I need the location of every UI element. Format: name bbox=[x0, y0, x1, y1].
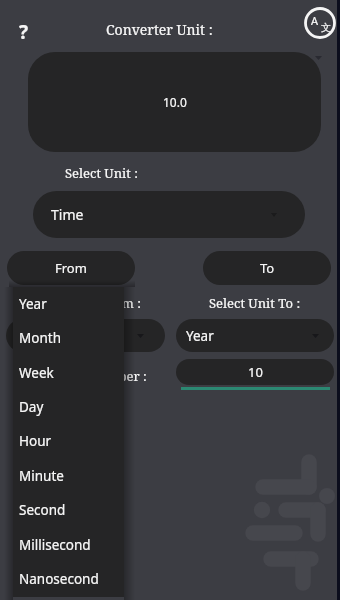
button[interactable]: To bbox=[203, 251, 331, 285]
button[interactable]: Change language bbox=[302, 5, 338, 41]
staticText: Year bbox=[16, 327, 44, 345]
staticText: Select Unit From : bbox=[31, 294, 141, 312]
staticText: From bbox=[55, 259, 87, 277]
button[interactable]: Second bbox=[13, 493, 124, 527]
staticText: Year bbox=[186, 327, 214, 345]
staticText: Second bbox=[19, 501, 66, 519]
staticText: Month bbox=[19, 329, 61, 347]
button[interactable]: Year bbox=[13, 287, 124, 321]
button[interactable]: Hour bbox=[13, 424, 124, 458]
button[interactable]: Year bbox=[176, 319, 334, 352]
button[interactable]: Time bbox=[33, 191, 305, 238]
button[interactable]: Help bbox=[9, 15, 39, 49]
button[interactable]: From bbox=[7, 251, 135, 285]
staticText: Nanosecond bbox=[19, 570, 99, 588]
button[interactable]: Minute bbox=[13, 459, 124, 493]
staticText: 10 bbox=[248, 363, 263, 381]
staticText: ? bbox=[19, 19, 29, 45]
staticText: Select Unit To : bbox=[209, 294, 301, 312]
staticText: Select Unit : bbox=[65, 164, 138, 182]
button[interactable]: Month bbox=[13, 321, 124, 355]
staticText: A bbox=[311, 13, 319, 28]
button[interactable]: 10 bbox=[176, 359, 334, 385]
staticText: Day bbox=[19, 398, 44, 416]
button[interactable]: Year bbox=[6, 319, 165, 352]
staticText: Week bbox=[19, 364, 54, 382]
staticText: 10.0 bbox=[163, 94, 187, 110]
staticText: 文 bbox=[321, 21, 331, 34]
staticText: Time bbox=[51, 205, 84, 224]
staticText: Millisecond bbox=[19, 536, 91, 554]
staticText: Converter Unit : bbox=[106, 20, 213, 39]
staticText: To bbox=[260, 259, 275, 277]
staticText: Year bbox=[19, 295, 47, 313]
staticText: Enter The Number : bbox=[24, 367, 147, 385]
button[interactable]: Millisecond bbox=[13, 528, 124, 562]
staticText: Minute bbox=[19, 467, 64, 485]
button[interactable]: Day bbox=[13, 390, 124, 424]
button[interactable]: Nanosecond bbox=[13, 562, 124, 596]
staticText: Hour bbox=[19, 432, 52, 450]
button[interactable]: Week bbox=[13, 356, 124, 390]
button[interactable]: 10.0 bbox=[28, 52, 321, 152]
